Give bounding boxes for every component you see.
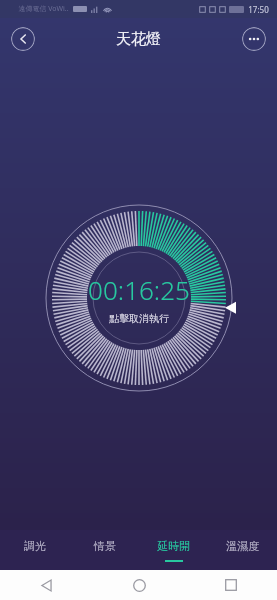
staticText: 遠傳電信 VoWi.. [18, 4, 69, 14]
staticText: 溫濕度 [226, 539, 259, 553]
button[interactable]: 延時開 [139, 530, 208, 570]
button[interactable]: 溫濕度 [208, 530, 277, 570]
button[interactable]: 情景 [70, 530, 139, 570]
button[interactable]: 調光 [0, 530, 70, 570]
staticText: 17:50 [248, 4, 269, 15]
staticText: 延時開 [157, 539, 190, 553]
staticText: 00:16:25 [88, 272, 190, 307]
button[interactable]: Back [11, 27, 35, 51]
staticText: 調光 [24, 539, 46, 553]
button[interactable]: Back [0, 570, 93, 600]
button[interactable]: 00:16:25 [41, 200, 237, 396]
button[interactable]: Recent apps [185, 570, 277, 600]
staticText: 情景 [94, 539, 116, 553]
staticText: 點擊取消執行 [109, 312, 169, 325]
staticText: 天花燈 [116, 30, 161, 49]
button[interactable]: More options [242, 27, 266, 51]
button[interactable]: Home [93, 570, 185, 600]
